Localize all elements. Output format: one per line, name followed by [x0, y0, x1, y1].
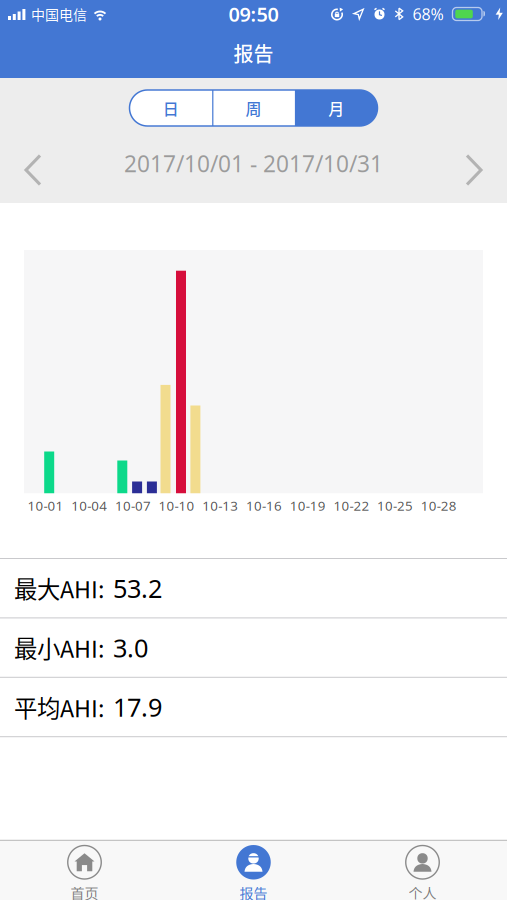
staticText: 53.2: [113, 571, 162, 605]
button[interactable]: 个人: [338, 842, 507, 898]
staticText: 10-10: [159, 497, 195, 514]
staticText: 10-22: [333, 497, 369, 514]
staticText: 报告: [239, 882, 267, 900]
staticText: 10-13: [202, 497, 238, 514]
button[interactable]: 首页: [0, 842, 169, 898]
staticText: 最大AHI:: [14, 571, 104, 605]
staticText: 10-16: [246, 497, 282, 514]
staticText: 10-04: [71, 497, 107, 514]
staticText: 报告: [233, 38, 273, 67]
staticText: 平均AHI:: [14, 690, 104, 724]
staticText: 周: [245, 96, 261, 120]
staticText: 17.9: [113, 690, 162, 724]
button[interactable]: Next month: [465, 153, 507, 186]
staticText: 10-19: [290, 497, 326, 514]
staticText: 月: [328, 96, 344, 120]
staticText: 10-01: [27, 497, 63, 514]
staticText: 日: [163, 96, 179, 120]
button[interactable]: 日: [129, 90, 212, 126]
button[interactable]: 月: [295, 90, 377, 126]
staticText: 最小AHI:: [14, 631, 104, 664]
staticText: 个人: [408, 882, 436, 900]
staticText: 10-25: [377, 497, 413, 514]
button[interactable]: Previous month: [0, 153, 42, 186]
staticText: 10-28: [421, 497, 457, 514]
staticText: 10-07: [115, 497, 151, 514]
staticText: 09:50: [228, 1, 278, 27]
staticText: 3.0: [113, 631, 148, 664]
button[interactable]: 周: [212, 90, 295, 126]
staticText: 首页: [70, 882, 98, 900]
button[interactable]: 报告: [169, 842, 338, 898]
staticText: 中国电信: [31, 4, 87, 24]
staticText: 68%: [412, 3, 443, 25]
staticText: 2017/10/01 - 2017/10/31: [124, 148, 383, 178]
